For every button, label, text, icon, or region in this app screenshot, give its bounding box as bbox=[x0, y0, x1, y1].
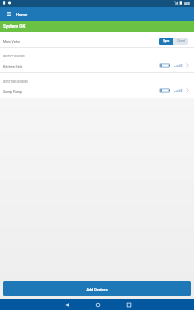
button[interactable]: Open navigation menu bbox=[5, 10, 13, 18]
staticText: Main Valve bbox=[3, 40, 159, 44]
button[interactable]: Sump Pump bbox=[0, 83, 194, 98]
button[interactable]: Back bbox=[51, 299, 82, 310]
button[interactable]: Kitchen Sink bbox=[0, 57, 194, 73]
button[interactable]: Add Devices bbox=[3, 281, 191, 296]
staticText: DETECTORS SENSORS bbox=[3, 80, 28, 83]
button[interactable]: Main Valve bbox=[0, 32, 194, 48]
staticText: Sump Pump bbox=[3, 90, 160, 94]
staticText: Closed bbox=[177, 40, 185, 43]
staticText: Open bbox=[163, 40, 170, 43]
staticText: Kitchen Sink bbox=[3, 65, 160, 69]
staticText: PROTECT SENSORS bbox=[3, 55, 25, 58]
staticText: Add Devices bbox=[86, 287, 108, 291]
button[interactable]: Home bbox=[82, 299, 113, 310]
button[interactable]: Open bbox=[159, 38, 173, 45]
button[interactable]: Recent apps bbox=[113, 299, 144, 310]
staticText: 4:08 bbox=[184, 2, 190, 6]
staticText: System OK bbox=[3, 24, 26, 29]
staticText: Home bbox=[16, 12, 28, 17]
button[interactable]: Closed bbox=[173, 38, 188, 45]
